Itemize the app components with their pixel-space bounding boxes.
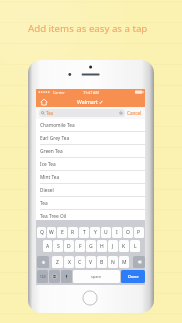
button[interactable]: Tea [39,109,125,117]
button[interactable]: B [97,256,107,268]
staticText: X [68,259,71,266]
button[interactable]: D [64,240,74,252]
button[interactable]: Done [121,270,145,283]
button[interactable]: V [86,256,96,268]
staticText: E [61,229,64,236]
staticText: Carrier [53,90,65,95]
staticText: C [78,259,82,266]
button[interactable]: F [75,240,85,252]
button[interactable]: S [53,240,63,252]
staticText: R [71,229,75,236]
staticText: Y [94,229,97,236]
button[interactable]: Green Tea [36,145,145,158]
staticText: U [104,229,108,236]
button[interactable]: L [130,240,140,252]
staticText: Q [40,229,44,236]
button[interactable]: Ice Tea [36,158,145,171]
staticText: W [49,229,54,236]
button[interactable]: Shift [37,256,49,268]
staticText: space [91,274,102,279]
button[interactable]: Q [37,227,46,238]
button[interactable]: I [112,227,122,238]
staticText: Tea [40,200,48,207]
button[interactable]: Y [90,227,100,238]
button[interactable]: Cancel [127,109,142,117]
staticText: 123 [40,275,46,279]
staticText: J [112,243,114,250]
button[interactable]: Diesel [36,184,145,197]
button[interactable]: O [123,227,133,238]
staticText: Green Tea [40,148,63,155]
staticText: K [122,243,126,250]
button[interactable]: Numbers [37,270,48,283]
button[interactable]: N [108,256,118,268]
staticText: H [100,243,104,250]
button[interactable]: P [134,227,144,238]
button[interactable]: U [101,227,111,238]
staticText: Ice Tea [40,161,56,168]
button[interactable]: H [97,240,107,252]
button[interactable]: G [86,240,96,252]
button[interactable]: Z [52,256,63,268]
button[interactable]: A [43,240,52,252]
button[interactable]: Emoji [49,270,60,283]
staticText: D [67,243,71,250]
staticText: M [122,259,127,266]
button[interactable]: Delete [133,256,145,268]
button[interactable]: R [68,227,78,238]
staticText: S [57,243,60,250]
staticText: I [116,229,118,236]
staticText: L [134,243,137,250]
button[interactable]: J [108,240,118,252]
staticText: G [89,243,93,250]
button[interactable]: C [75,256,85,268]
staticText: F [79,243,82,250]
button[interactable]: Mint Tea [36,171,145,184]
button[interactable]: Home [39,97,48,106]
button[interactable]: Tea Tree Oil [36,210,145,223]
button[interactable]: T [79,227,89,238]
staticText: 11:47 AM [83,90,99,95]
button[interactable]: E [57,227,67,238]
button[interactable]: Tea [36,197,145,210]
staticText: A [46,243,50,250]
staticText: Z [56,259,59,266]
button[interactable]: M [119,256,129,268]
staticText: Cancel [127,110,142,116]
staticText: N [111,259,115,266]
staticText: Chamomile Tea [40,122,75,129]
staticText: B [100,259,104,266]
button[interactable]: Chamomile Tea [36,119,145,132]
staticText: V [89,259,93,266]
staticText: Done [128,274,139,280]
staticText: Tea [46,110,54,116]
button[interactable]: X [64,256,74,268]
staticText: Tea Tree Oil [40,213,67,220]
staticText: O [126,229,130,236]
button[interactable]: space [73,270,120,283]
staticText: P [137,229,141,236]
button[interactable]: W [47,227,56,238]
button[interactable]: K [119,240,129,252]
staticText: T [83,229,86,236]
staticText: Earl Grey Tea [40,135,70,142]
staticText: Mint Tea [40,174,60,181]
staticText: Add items as easy as a tap [28,22,148,35]
button[interactable]: Earl Grey Tea [36,132,145,145]
staticText: Walmart ✓ [77,98,104,105]
staticText: Diesel [40,187,54,194]
button[interactable]: Dictation [61,270,72,283]
